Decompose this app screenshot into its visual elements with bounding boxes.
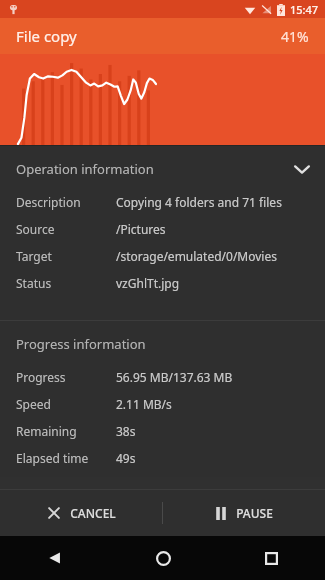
button[interactable]: Operation information xyxy=(0,146,325,188)
button[interactable]: CANCEL xyxy=(0,490,162,536)
staticText: Operation information xyxy=(16,160,293,178)
staticText: Progress xyxy=(16,369,116,385)
button[interactable]: Back xyxy=(0,536,109,580)
staticText: 15:47 xyxy=(290,2,319,17)
staticText: /storage/emulated/0/Movies xyxy=(116,248,277,264)
staticText: Source xyxy=(16,221,116,237)
staticText: 2.11 MB/s xyxy=(116,396,172,412)
staticText: 56.95 MB/137.63 MB xyxy=(116,369,233,385)
staticText: Remaining xyxy=(16,423,116,439)
button[interactable]: Recent apps xyxy=(217,536,325,580)
staticText: Elapsed time xyxy=(16,450,116,466)
staticText: 41% xyxy=(281,27,309,46)
staticText: Description xyxy=(16,194,116,210)
staticText: Target xyxy=(16,248,116,264)
button[interactable]: PAUSE xyxy=(163,490,325,536)
staticText: 38s xyxy=(116,423,136,439)
staticText: vzGhlTt.jpg xyxy=(116,275,180,291)
button[interactable]: Home xyxy=(109,536,217,580)
staticText: Speed xyxy=(16,396,116,412)
staticText: Copying 4 folders and 71 files xyxy=(116,194,282,210)
staticText: CANCEL xyxy=(70,505,116,521)
staticText: Progress information xyxy=(16,335,146,353)
staticText: PAUSE xyxy=(236,505,273,521)
staticText: Status xyxy=(16,275,116,291)
staticText: File copy xyxy=(16,26,77,46)
other: Collapse operation information xyxy=(293,164,311,175)
staticText: /Pictures xyxy=(116,221,166,237)
staticText: 49s xyxy=(116,450,136,466)
